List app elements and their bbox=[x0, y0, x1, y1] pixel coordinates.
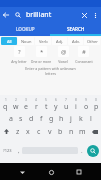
staticText: SEARCH bbox=[67, 26, 85, 32]
staticText: brilliant bbox=[26, 10, 52, 20]
button[interactable]: More options bbox=[90, 7, 101, 23]
staticText: r bbox=[35, 102, 38, 112]
staticText: ?123 bbox=[3, 148, 12, 153]
button[interactable]: # bbox=[74, 46, 93, 64]
button[interactable]: 7 bbox=[61, 97, 71, 112]
staticText: 3 bbox=[25, 98, 27, 102]
button[interactable]: f bbox=[36, 112, 46, 125]
staticText: j bbox=[70, 114, 72, 124]
button[interactable]: 4 bbox=[31, 97, 41, 112]
button[interactable]: Search bbox=[87, 145, 99, 157]
button[interactable]: m bbox=[77, 125, 88, 138]
staticText: f bbox=[40, 114, 43, 124]
button[interactable]: Adj. bbox=[52, 37, 67, 45]
staticText: b bbox=[58, 127, 63, 137]
staticText: Enter a pattern with unknown bbox=[25, 66, 76, 71]
button[interactable]: Clear bbox=[78, 7, 90, 23]
staticText: ? bbox=[18, 48, 21, 56]
staticText: n bbox=[69, 127, 74, 137]
staticText: g bbox=[49, 114, 54, 124]
button[interactable]: z bbox=[13, 125, 23, 138]
button[interactable]: Home bbox=[44, 165, 58, 179]
button[interactable]: 1 bbox=[0, 97, 11, 112]
button[interactable]: k bbox=[76, 112, 86, 125]
staticText: # bbox=[82, 48, 86, 56]
staticText: 9 bbox=[85, 98, 87, 102]
staticText: 0 bbox=[95, 98, 97, 102]
staticText: letters bbox=[45, 71, 56, 76]
button[interactable]: All bbox=[1, 37, 17, 45]
button[interactable]: Search bbox=[12, 7, 23, 23]
staticText: x bbox=[26, 127, 30, 137]
button[interactable]: 3 bbox=[21, 97, 31, 112]
button[interactable]: a bbox=[5, 112, 16, 125]
staticText: c bbox=[37, 127, 41, 137]
staticText: t bbox=[45, 102, 48, 112]
staticText: Vowel bbox=[58, 59, 68, 64]
button[interactable]: ? bbox=[8, 46, 30, 64]
button[interactable]: Recents bbox=[72, 165, 86, 179]
button[interactable]: 2 bbox=[11, 97, 21, 112]
staticText: h bbox=[59, 114, 64, 124]
staticText: 5 bbox=[45, 98, 47, 102]
button[interactable]: Noun bbox=[18, 37, 34, 45]
staticText: u bbox=[64, 102, 69, 112]
button[interactable]: 9 bbox=[81, 97, 91, 112]
staticText: i bbox=[75, 102, 77, 112]
staticText: o bbox=[84, 102, 89, 112]
button[interactable]: 5 bbox=[41, 97, 51, 112]
button[interactable]: b bbox=[55, 125, 66, 138]
staticText: l bbox=[90, 114, 92, 124]
staticText: Verb bbox=[39, 39, 48, 44]
staticText: 6 bbox=[55, 98, 57, 102]
staticText: 7 bbox=[65, 98, 67, 102]
button[interactable]: ?123 bbox=[0, 138, 15, 163]
staticText: * bbox=[40, 48, 44, 56]
button[interactable]: SEARCH bbox=[50, 23, 101, 36]
button[interactable]: s bbox=[16, 112, 26, 125]
button[interactable]: Back bbox=[0, 7, 12, 23]
button[interactable]: v bbox=[44, 125, 55, 138]
button[interactable]: 6 bbox=[51, 97, 61, 112]
staticText: m bbox=[79, 127, 86, 137]
staticText: e bbox=[24, 102, 28, 112]
button[interactable]: l bbox=[86, 112, 96, 125]
button[interactable]: @ bbox=[52, 46, 74, 64]
button[interactable]: c bbox=[33, 125, 44, 138]
button[interactable]: Shift bbox=[0, 125, 13, 138]
button[interactable]: . bbox=[78, 138, 85, 163]
button[interactable]: Backspace bbox=[88, 125, 101, 138]
button[interactable]: d bbox=[26, 112, 36, 125]
staticText: s bbox=[19, 114, 23, 124]
button[interactable]: g bbox=[46, 112, 56, 125]
staticText: z bbox=[16, 127, 20, 137]
button[interactable]: 0 bbox=[91, 97, 101, 112]
button[interactable]: x bbox=[23, 125, 33, 138]
staticText: v bbox=[48, 127, 52, 137]
button[interactable]: 8 bbox=[71, 97, 81, 112]
button[interactable]: Verb bbox=[35, 37, 51, 45]
staticText: 2 bbox=[15, 98, 17, 102]
staticText: . bbox=[81, 147, 83, 155]
staticText: One or more letters bbox=[30, 59, 52, 64]
button[interactable]: h bbox=[56, 112, 66, 125]
button[interactable]: j bbox=[66, 112, 76, 125]
button[interactable]: * bbox=[30, 46, 52, 64]
button[interactable]: n bbox=[66, 125, 77, 138]
button[interactable]: Other bbox=[84, 37, 100, 45]
staticText: Other bbox=[87, 39, 98, 44]
button[interactable]: , bbox=[15, 138, 22, 163]
button[interactable]: Back bbox=[15, 165, 29, 179]
staticText: @ bbox=[61, 48, 67, 56]
staticText: Adj. bbox=[56, 39, 64, 44]
staticText: 8 bbox=[75, 98, 77, 102]
staticText: d bbox=[29, 114, 34, 124]
staticText: LOOKUP bbox=[16, 26, 35, 32]
button[interactable]: LOOKUP bbox=[0, 23, 50, 36]
staticText: Noun bbox=[21, 39, 32, 44]
staticText: p bbox=[94, 102, 99, 112]
staticText: a bbox=[9, 114, 13, 124]
staticText: 1 bbox=[5, 98, 7, 102]
button[interactable]: Adv. bbox=[68, 37, 83, 45]
